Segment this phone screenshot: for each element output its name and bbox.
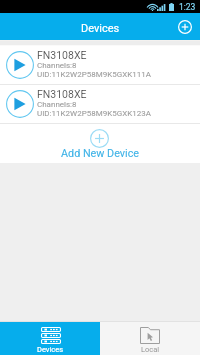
button[interactable]: FN3108XE (0, 85, 200, 123)
staticText: Channels:8 (37, 61, 77, 70)
staticText: UID:11K2W2P58M9K5GXK111A (37, 70, 151, 79)
staticText: 1:23 (179, 2, 196, 12)
staticText: Devices (81, 22, 120, 35)
staticText: Local (141, 345, 160, 354)
staticText: FN3108XE (37, 49, 87, 61)
staticText: FN3108XE (37, 88, 87, 100)
staticText: Devices (37, 345, 64, 354)
staticText: Add New Device (61, 147, 140, 160)
button[interactable]: Add device (175, 17, 195, 37)
staticText: Channels:8 (37, 100, 77, 109)
button[interactable]: Local (100, 322, 200, 355)
button[interactable]: Devices (0, 322, 100, 355)
button[interactable]: Add New Device (0, 124, 200, 163)
button[interactable]: FN3108XE (0, 46, 200, 84)
staticText: UID:11K2W2P58M9K5GXK123A (37, 109, 151, 118)
